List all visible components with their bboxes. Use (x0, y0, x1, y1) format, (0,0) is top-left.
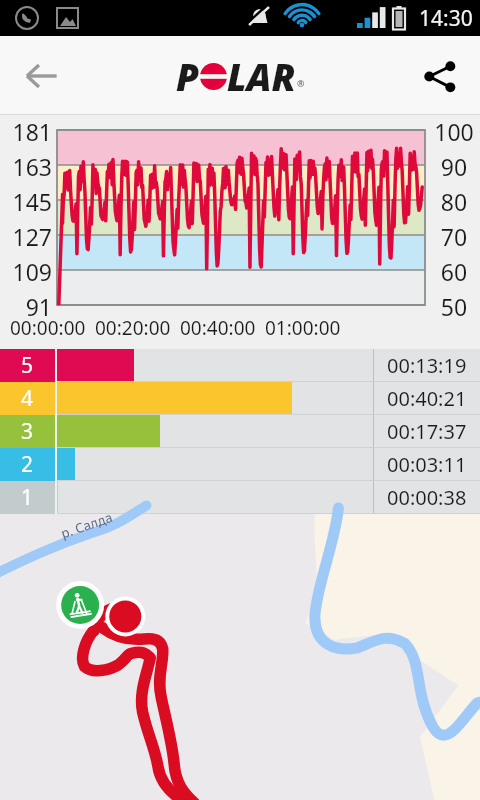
staticText: 145 (0, 186, 52, 217)
button[interactable]: 2 (0, 448, 480, 481)
button[interactable]: Back (12, 47, 70, 105)
staticText: 100 (428, 116, 480, 147)
button[interactable]: Share (410, 47, 468, 105)
staticText: 00:40:21 (387, 385, 467, 412)
staticText: 14:30 (419, 4, 473, 33)
staticText: P (176, 51, 200, 101)
staticText: 3 (21, 417, 34, 446)
staticText: р. Салда (58, 508, 115, 542)
button[interactable]: р. Салда (0, 514, 480, 800)
button[interactable]: 1 (0, 481, 480, 514)
staticText: ® (297, 77, 305, 89)
staticText: 01:00:00 (265, 315, 341, 341)
staticText: 1 (21, 483, 34, 512)
staticText: 91 (0, 291, 52, 322)
staticText: 00:03:11 (387, 451, 467, 478)
staticText: 60 (428, 256, 480, 287)
staticText: 00:17:37 (387, 418, 467, 445)
staticText: 80 (428, 186, 480, 217)
staticText: 50 (428, 291, 480, 322)
staticText: 00:20:00 (95, 315, 171, 341)
staticText: 4 (21, 384, 34, 413)
button[interactable]: 5 (0, 349, 480, 382)
staticText: LAR (227, 51, 296, 101)
staticText: 127 (0, 221, 52, 252)
staticText: 70 (428, 221, 480, 252)
button[interactable]: 4 (0, 382, 480, 415)
staticText: 00:00:38 (387, 484, 467, 511)
button[interactable]: 3 (0, 415, 480, 448)
staticText: 2 (21, 450, 34, 479)
staticText: 00:00:00 (10, 315, 86, 341)
staticText: 00:40:00 (180, 315, 256, 341)
staticText: 5 (21, 351, 34, 380)
staticText: 109 (0, 256, 52, 287)
staticText: 163 (0, 151, 52, 182)
staticText: 181 (0, 116, 52, 147)
staticText: 00:13:19 (387, 352, 467, 379)
staticText: 90 (428, 151, 480, 182)
